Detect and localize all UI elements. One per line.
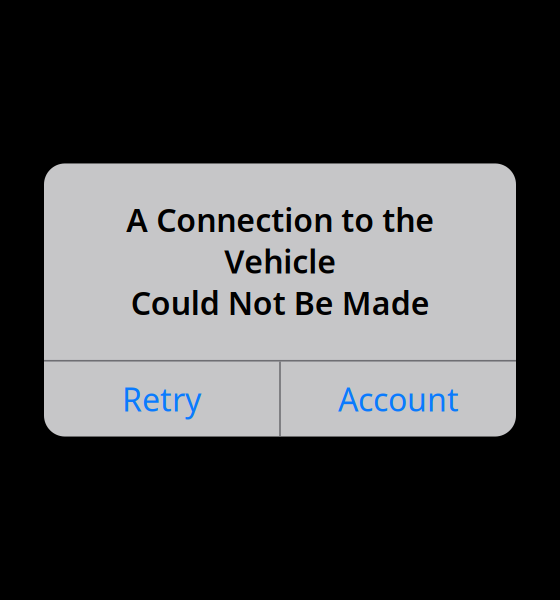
button[interactable]: Retry (44, 361, 279, 436)
staticText: Retry (122, 378, 201, 420)
staticText: Account (338, 378, 459, 420)
button[interactable]: Account (281, 361, 516, 436)
staticText: A Connection to the Vehicle Could Not Be… (126, 198, 434, 324)
